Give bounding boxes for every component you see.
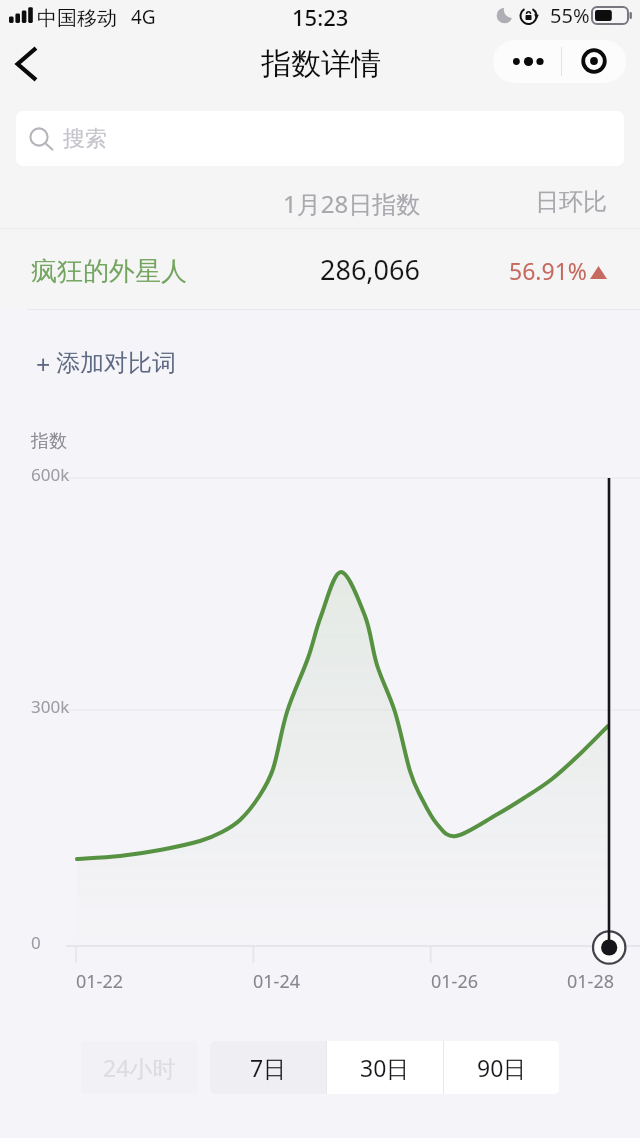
button[interactable]: 7日 xyxy=(210,1041,326,1094)
staticText: 01-24 xyxy=(253,969,300,994)
staticText: 300k xyxy=(31,695,70,718)
staticText: 01-22 xyxy=(76,969,123,994)
button[interactable]: More xyxy=(493,40,561,83)
staticText: 90日 xyxy=(477,1052,527,1083)
staticText: + xyxy=(36,347,51,381)
staticText: 286,066 xyxy=(320,251,420,288)
staticText: 中国移动 xyxy=(37,6,117,31)
button[interactable]: + xyxy=(28,340,184,388)
button[interactable]: Back xyxy=(2,40,50,88)
button[interactable]: 90日 xyxy=(444,1041,559,1094)
button[interactable]: 疯狂的外星人 xyxy=(0,229,640,310)
staticText: 添加对比词 xyxy=(56,348,176,378)
staticText: 指数详情 xyxy=(261,45,381,83)
staticText: 搜索 xyxy=(63,125,107,153)
button[interactable]: 30日 xyxy=(327,1041,443,1094)
staticText: 600k xyxy=(31,463,70,486)
staticText: 4G xyxy=(131,4,156,30)
staticText: 56.91% xyxy=(509,255,587,286)
button[interactable]: 搜索 xyxy=(16,111,624,166)
staticText: 0 xyxy=(31,931,41,954)
staticText: 30日 xyxy=(360,1052,410,1083)
staticText: 疯狂的外星人 xyxy=(31,255,187,288)
staticText: 01-26 xyxy=(431,969,478,994)
staticText: 1月28日指数 xyxy=(283,187,421,220)
staticText: 指数 xyxy=(31,430,67,453)
staticText: 7日 xyxy=(250,1052,287,1083)
button[interactable]: Close mini program xyxy=(563,40,626,83)
staticText: 24小时 xyxy=(103,1052,176,1083)
staticText: 01-28 xyxy=(567,969,614,994)
staticText: 日环比 xyxy=(535,187,607,217)
staticText: 15:23 xyxy=(292,2,349,32)
button[interactable]: 24小时 xyxy=(81,1041,198,1094)
staticText: 55% xyxy=(550,2,590,29)
